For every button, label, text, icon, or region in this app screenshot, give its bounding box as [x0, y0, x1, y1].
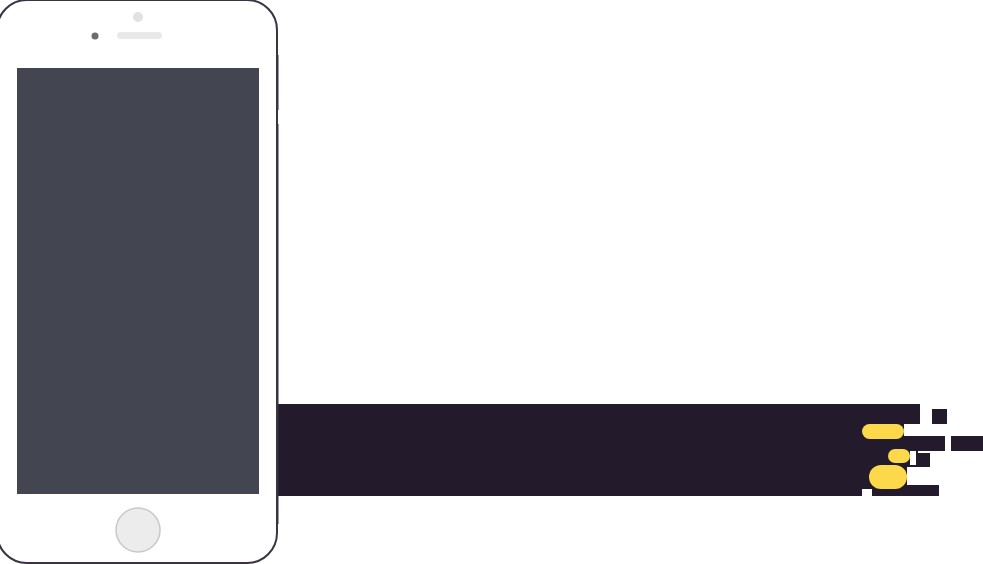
button[interactable]: Promotional banner — [0, 0, 983, 564]
button[interactable]: Smartphone device — [0, 0, 983, 564]
